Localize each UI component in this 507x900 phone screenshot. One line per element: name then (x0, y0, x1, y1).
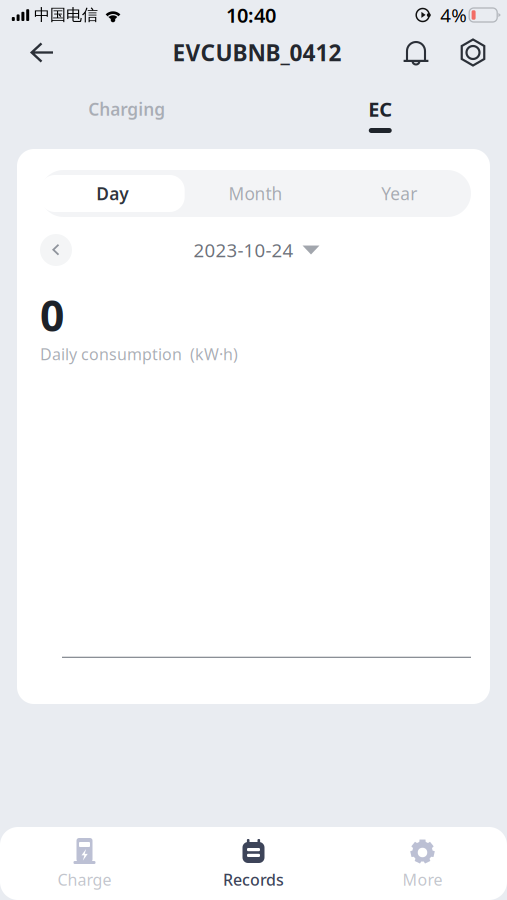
button[interactable]: Day (40, 170, 184, 217)
staticText: 中国电信 (34, 5, 98, 25)
staticText: EC (368, 96, 392, 122)
button[interactable]: 2023-10-24 (191, 238, 319, 262)
button[interactable]: Records (169, 838, 338, 890)
button[interactable]: Month (184, 170, 327, 217)
staticText: 0 (40, 287, 64, 343)
staticText: 2023-10-24 (193, 238, 293, 262)
staticText: EVCUBNB_0412 (172, 37, 341, 67)
button[interactable]: Year (327, 170, 471, 217)
button[interactable]: Previous day (40, 234, 72, 266)
staticText: 10:40 (226, 2, 276, 28)
staticText: More (402, 869, 442, 890)
staticText: Month (228, 182, 282, 205)
button[interactable]: More (338, 838, 507, 890)
staticText: Day (96, 182, 128, 205)
button[interactable]: Settings (451, 30, 495, 75)
button[interactable]: Back (20, 30, 64, 75)
staticText: Daily consumption (kW·h) (40, 343, 238, 365)
button[interactable]: Charging (0, 75, 253, 149)
staticText: Records (223, 869, 284, 890)
staticText: 4% (440, 3, 467, 27)
staticText: Year (381, 182, 417, 205)
button[interactable]: Notifications (381, 30, 451, 75)
button[interactable]: EC (253, 75, 507, 149)
staticText: Charge (57, 869, 111, 890)
button[interactable]: Charge (0, 838, 169, 890)
staticText: Charging (88, 97, 165, 120)
